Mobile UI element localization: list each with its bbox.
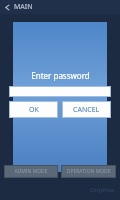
- button[interactable]: OK: [9, 101, 58, 118]
- button[interactable]: CANCEL: [62, 101, 111, 118]
- staticText: OnlyFlex: [90, 186, 115, 194]
- staticText: Enter password: [31, 70, 90, 81]
- staticText: MAIN: [14, 2, 33, 12]
- staticText: CANCEL: [73, 105, 100, 115]
- button[interactable]: OPERATION MODE: [61, 165, 116, 178]
- staticText: OK: [29, 105, 39, 115]
- button[interactable]: [9, 86, 111, 97]
- staticText: ADMIN MODE: [14, 168, 48, 175]
- staticText: OPERATION MODE: [66, 168, 111, 175]
- button[interactable]: ADMIN MODE: [4, 165, 58, 178]
- button[interactable]: Back: [0, 0, 14, 14]
